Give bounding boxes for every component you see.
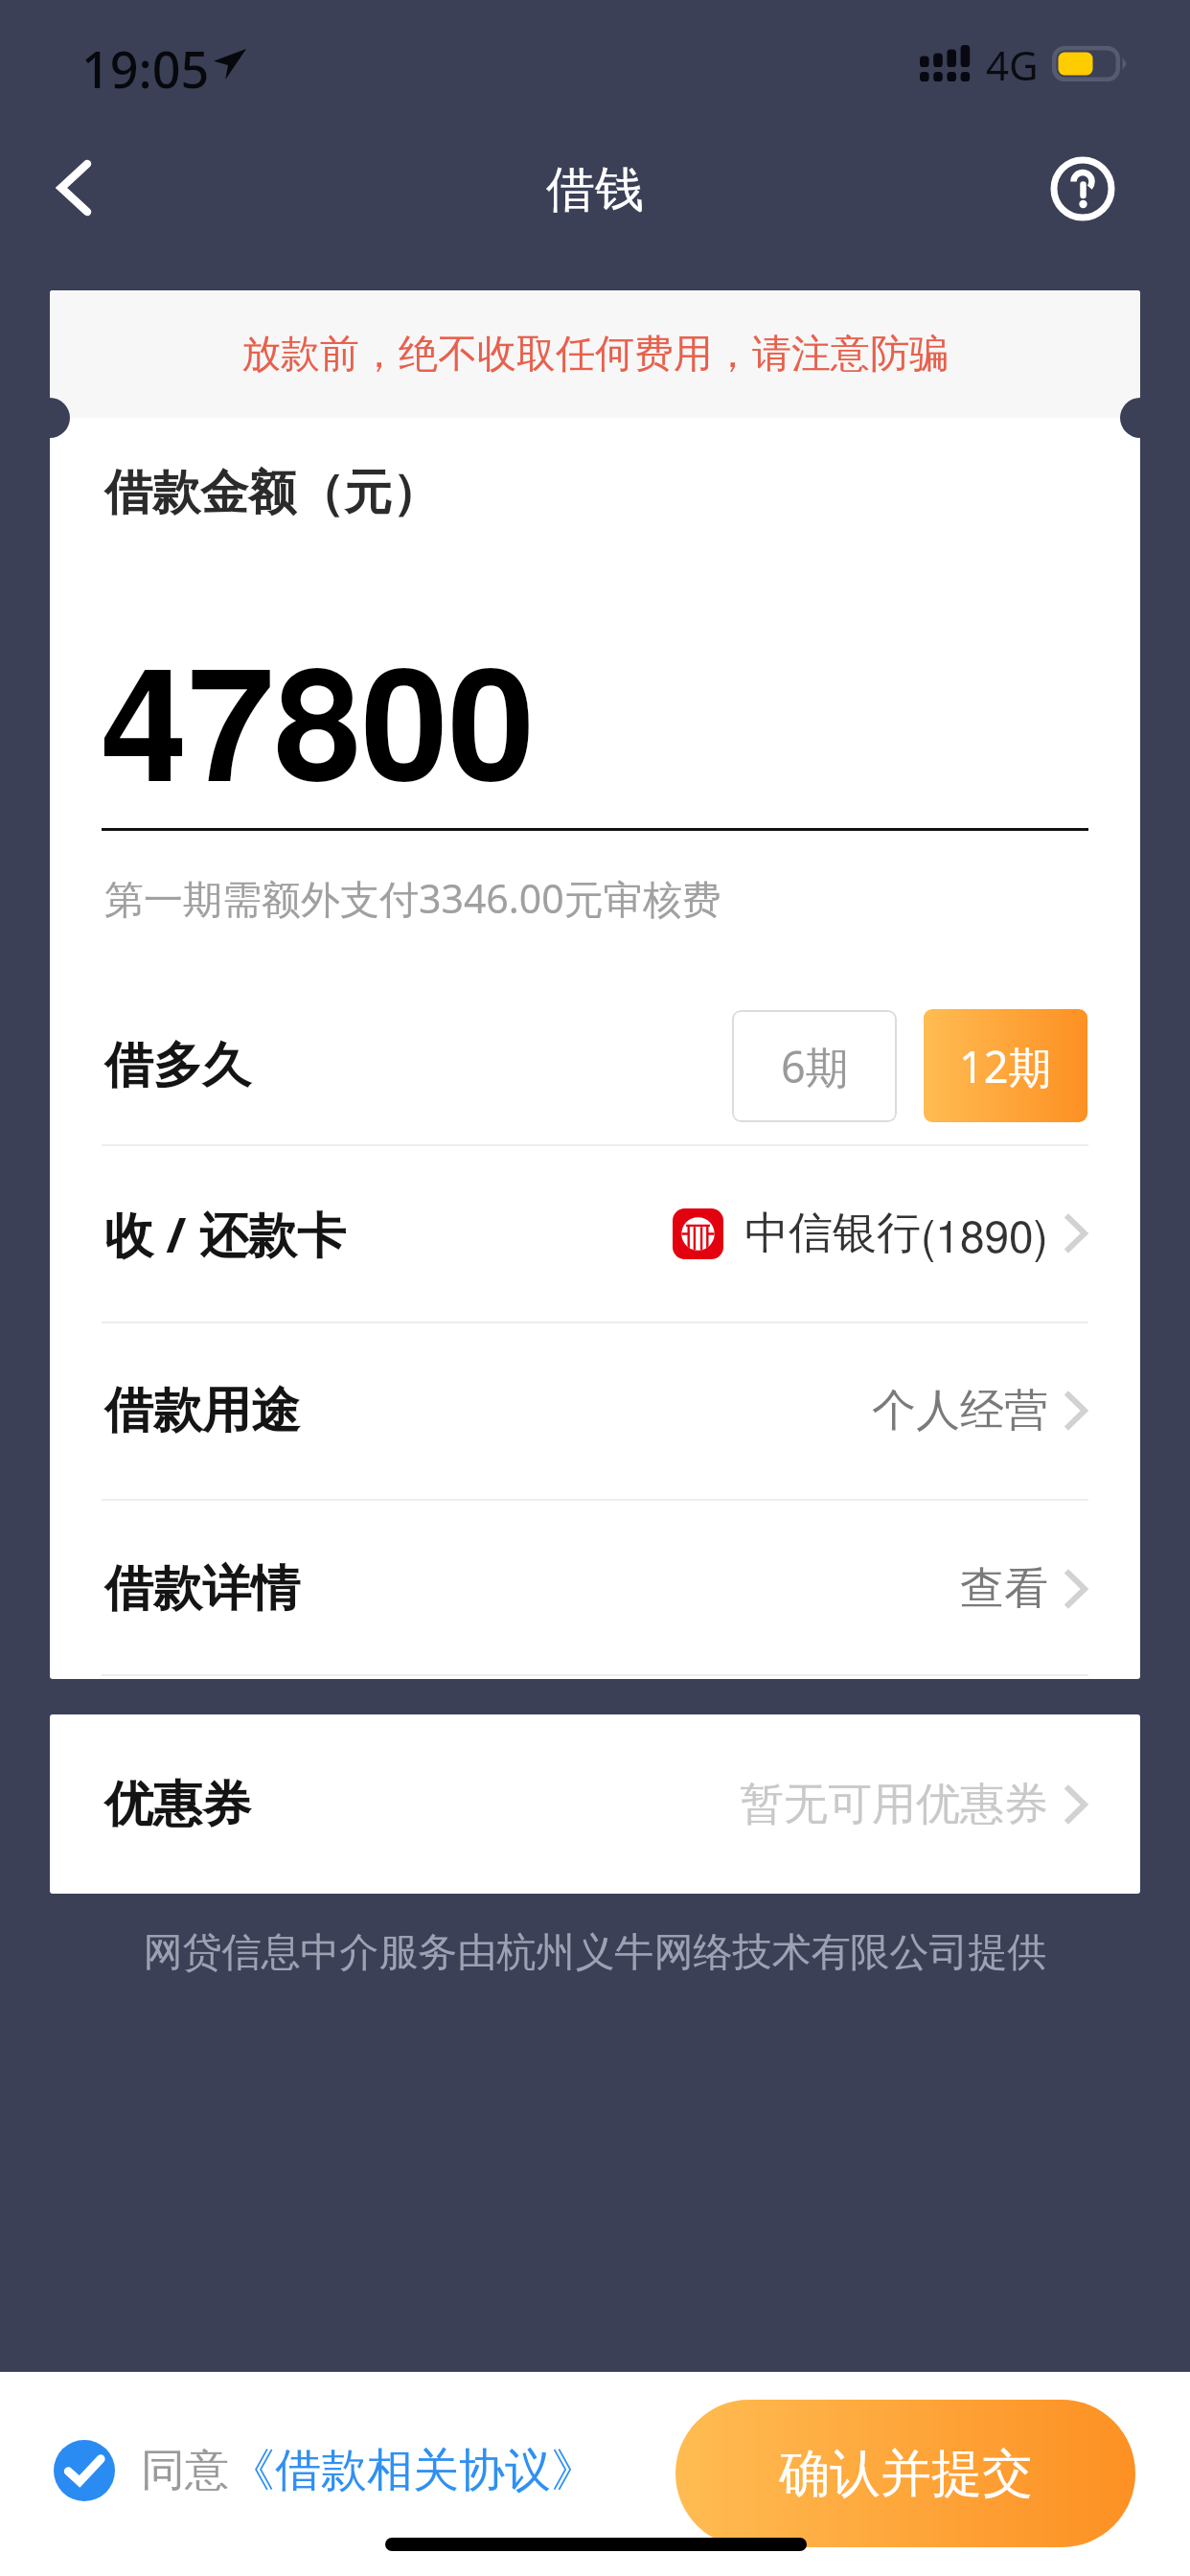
staticText: 中信银行 (744, 1206, 921, 1261)
staticText: 同意 (141, 2443, 229, 2498)
button[interactable]: 确认并提交 (675, 2400, 1135, 2547)
staticText: 优惠券 (104, 1774, 251, 1835)
button[interactable]: 优惠券 (50, 1714, 1140, 1894)
staticText: (1890) (921, 1202, 1048, 1265)
button[interactable]: Back (31, 145, 117, 231)
button[interactable]: 6期 (732, 1010, 897, 1122)
staticText: 借款详情 (104, 1558, 300, 1620)
button[interactable]: Help (1041, 147, 1125, 231)
button[interactable]: 《借款相关协议》 (229, 2442, 597, 2499)
staticText: 网贷信息中介服务由杭州义牛网络技术有限公司提供 (0, 1928, 1190, 1978)
staticText: 19:05 (81, 34, 210, 103)
staticText: 借款金额（元） (104, 463, 440, 523)
staticText: 4G (986, 37, 1039, 92)
staticText: 借钱 (546, 159, 644, 220)
staticText: 6期 (781, 1037, 849, 1095)
staticText: 确认并提交 (779, 2442, 1033, 2506)
staticText: 个人经营 (872, 1383, 1048, 1438)
button[interactable]: 借款用途 (50, 1322, 1140, 1499)
button[interactable]: 12期 (924, 1009, 1087, 1122)
staticText: 借款用途 (104, 1380, 300, 1441)
button[interactable]: 借款详情 (50, 1499, 1140, 1679)
staticText: 暂无可用优惠券 (740, 1777, 1048, 1832)
staticText: 第一期需额外支付3346.00元审核费 (104, 871, 721, 925)
staticText: 借多久 (104, 1035, 251, 1096)
staticText: 查看 (960, 1561, 1048, 1617)
staticText: 12期 (959, 1037, 1052, 1095)
staticText: 47800 (101, 606, 536, 829)
button[interactable]: Agree checkbox (54, 2440, 115, 2501)
button[interactable]: 收 / 还款卡 (50, 1144, 1140, 1322)
staticText: 收 / 还款卡 (104, 1200, 346, 1267)
staticText: 放款前，绝不收取任何费用，请注意防骗 (241, 330, 949, 379)
